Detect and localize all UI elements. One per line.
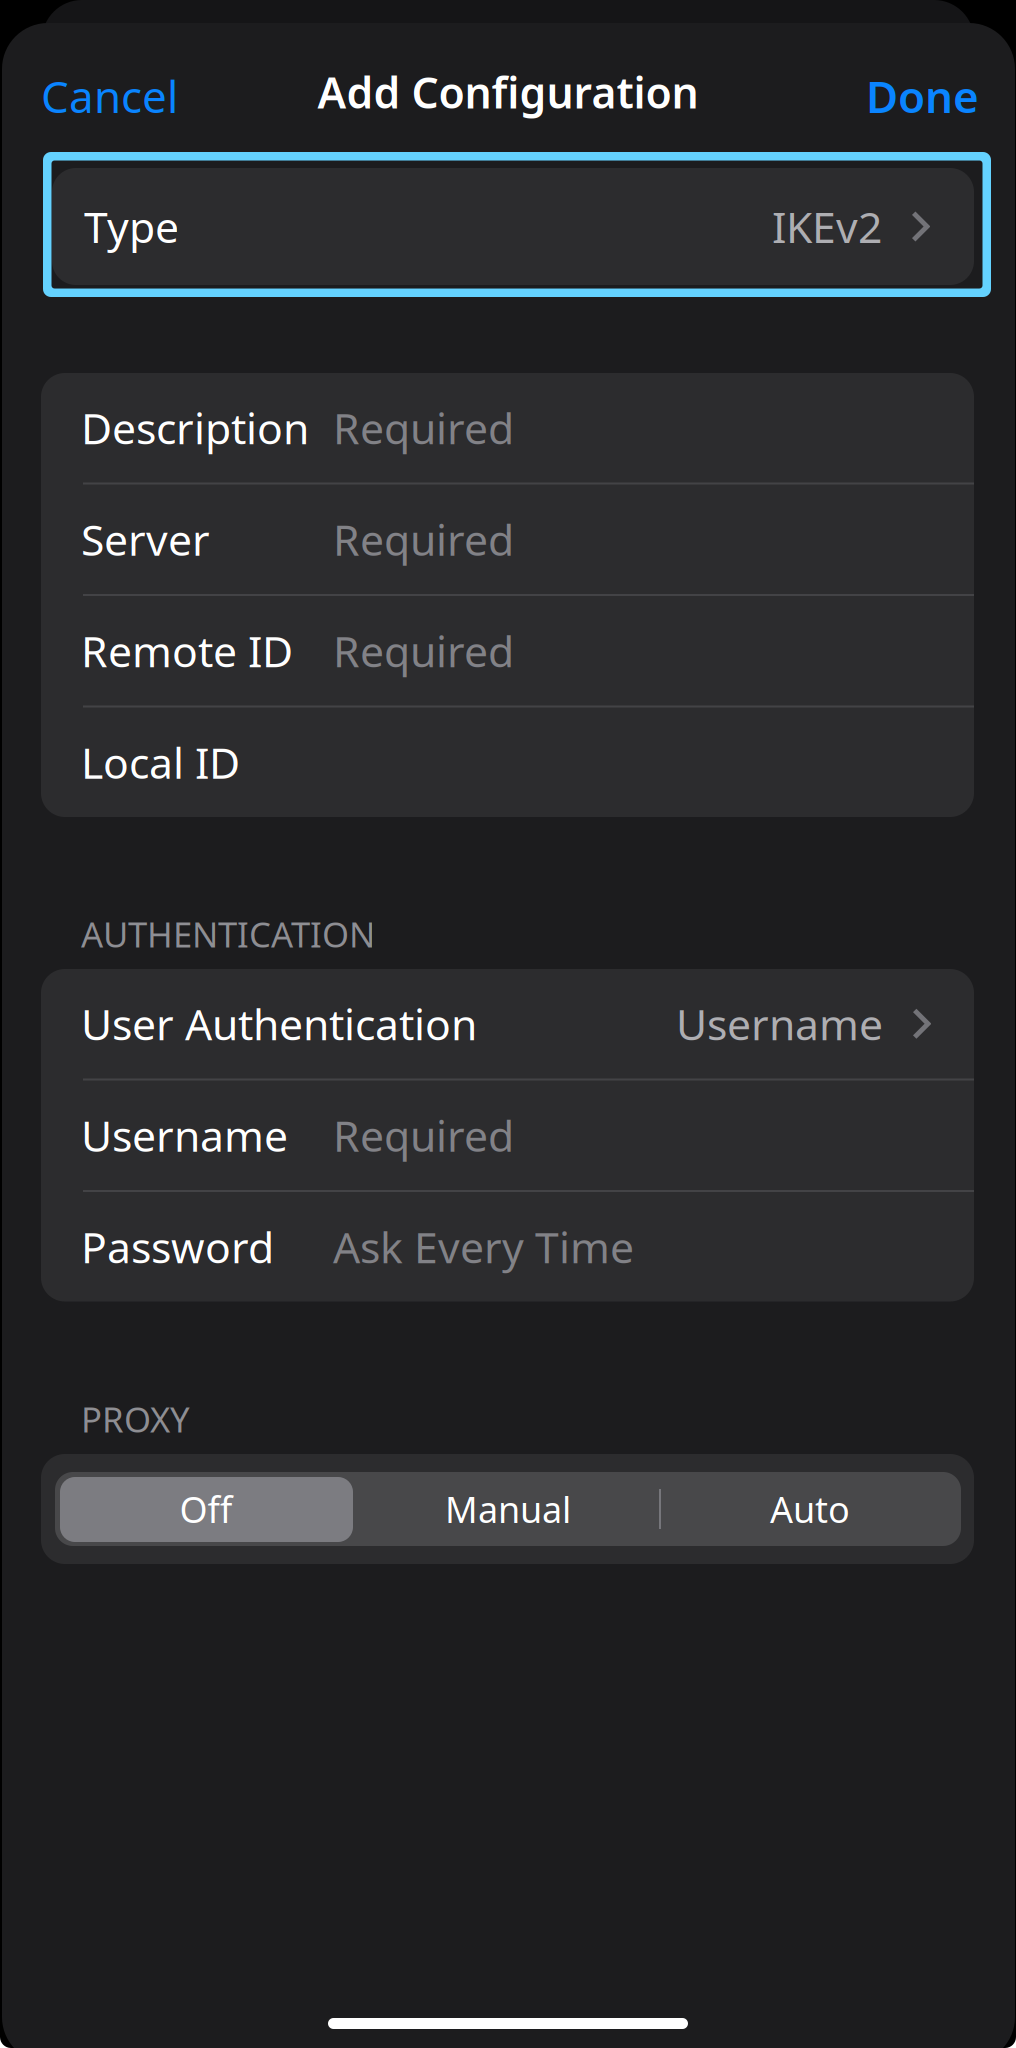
staticText: Type [84, 198, 179, 255]
staticText: Description [81, 399, 309, 456]
button[interactable]: User Authentication [41, 969, 974, 1078]
staticText: Manual [445, 1485, 571, 1533]
staticText: Add Configuration [317, 64, 698, 120]
button[interactable]: Done [799, 58, 979, 134]
staticText: IKEv2 [772, 198, 882, 255]
button[interactable]: Cancel [41, 58, 221, 134]
staticText: Required [333, 399, 514, 456]
staticText: PROXY [81, 1396, 190, 1442]
staticText: Required [333, 1107, 514, 1164]
staticText: Cancel [41, 67, 178, 125]
staticText: Ask Every Time [333, 1218, 634, 1275]
staticText: Done [866, 67, 979, 125]
staticText: Remote ID [81, 622, 293, 679]
staticText: AUTHENTICATION [81, 911, 375, 957]
staticText: Server [81, 511, 210, 568]
staticText: Off [179, 1485, 232, 1533]
staticText: Username [81, 1107, 288, 1164]
button[interactable]: Type [52, 172, 974, 281]
staticText: Required [333, 511, 514, 568]
button[interactable]: Off [55, 1472, 357, 1546]
button[interactable]: Manual [357, 1472, 659, 1546]
staticText: Auto [770, 1485, 850, 1533]
staticText: Username [676, 995, 883, 1052]
staticText: Required [333, 622, 514, 679]
staticText: Local ID [81, 734, 240, 791]
staticText: Password [81, 1218, 274, 1275]
staticText: User Authentication [81, 995, 477, 1052]
button[interactable]: Auto [659, 1472, 961, 1546]
